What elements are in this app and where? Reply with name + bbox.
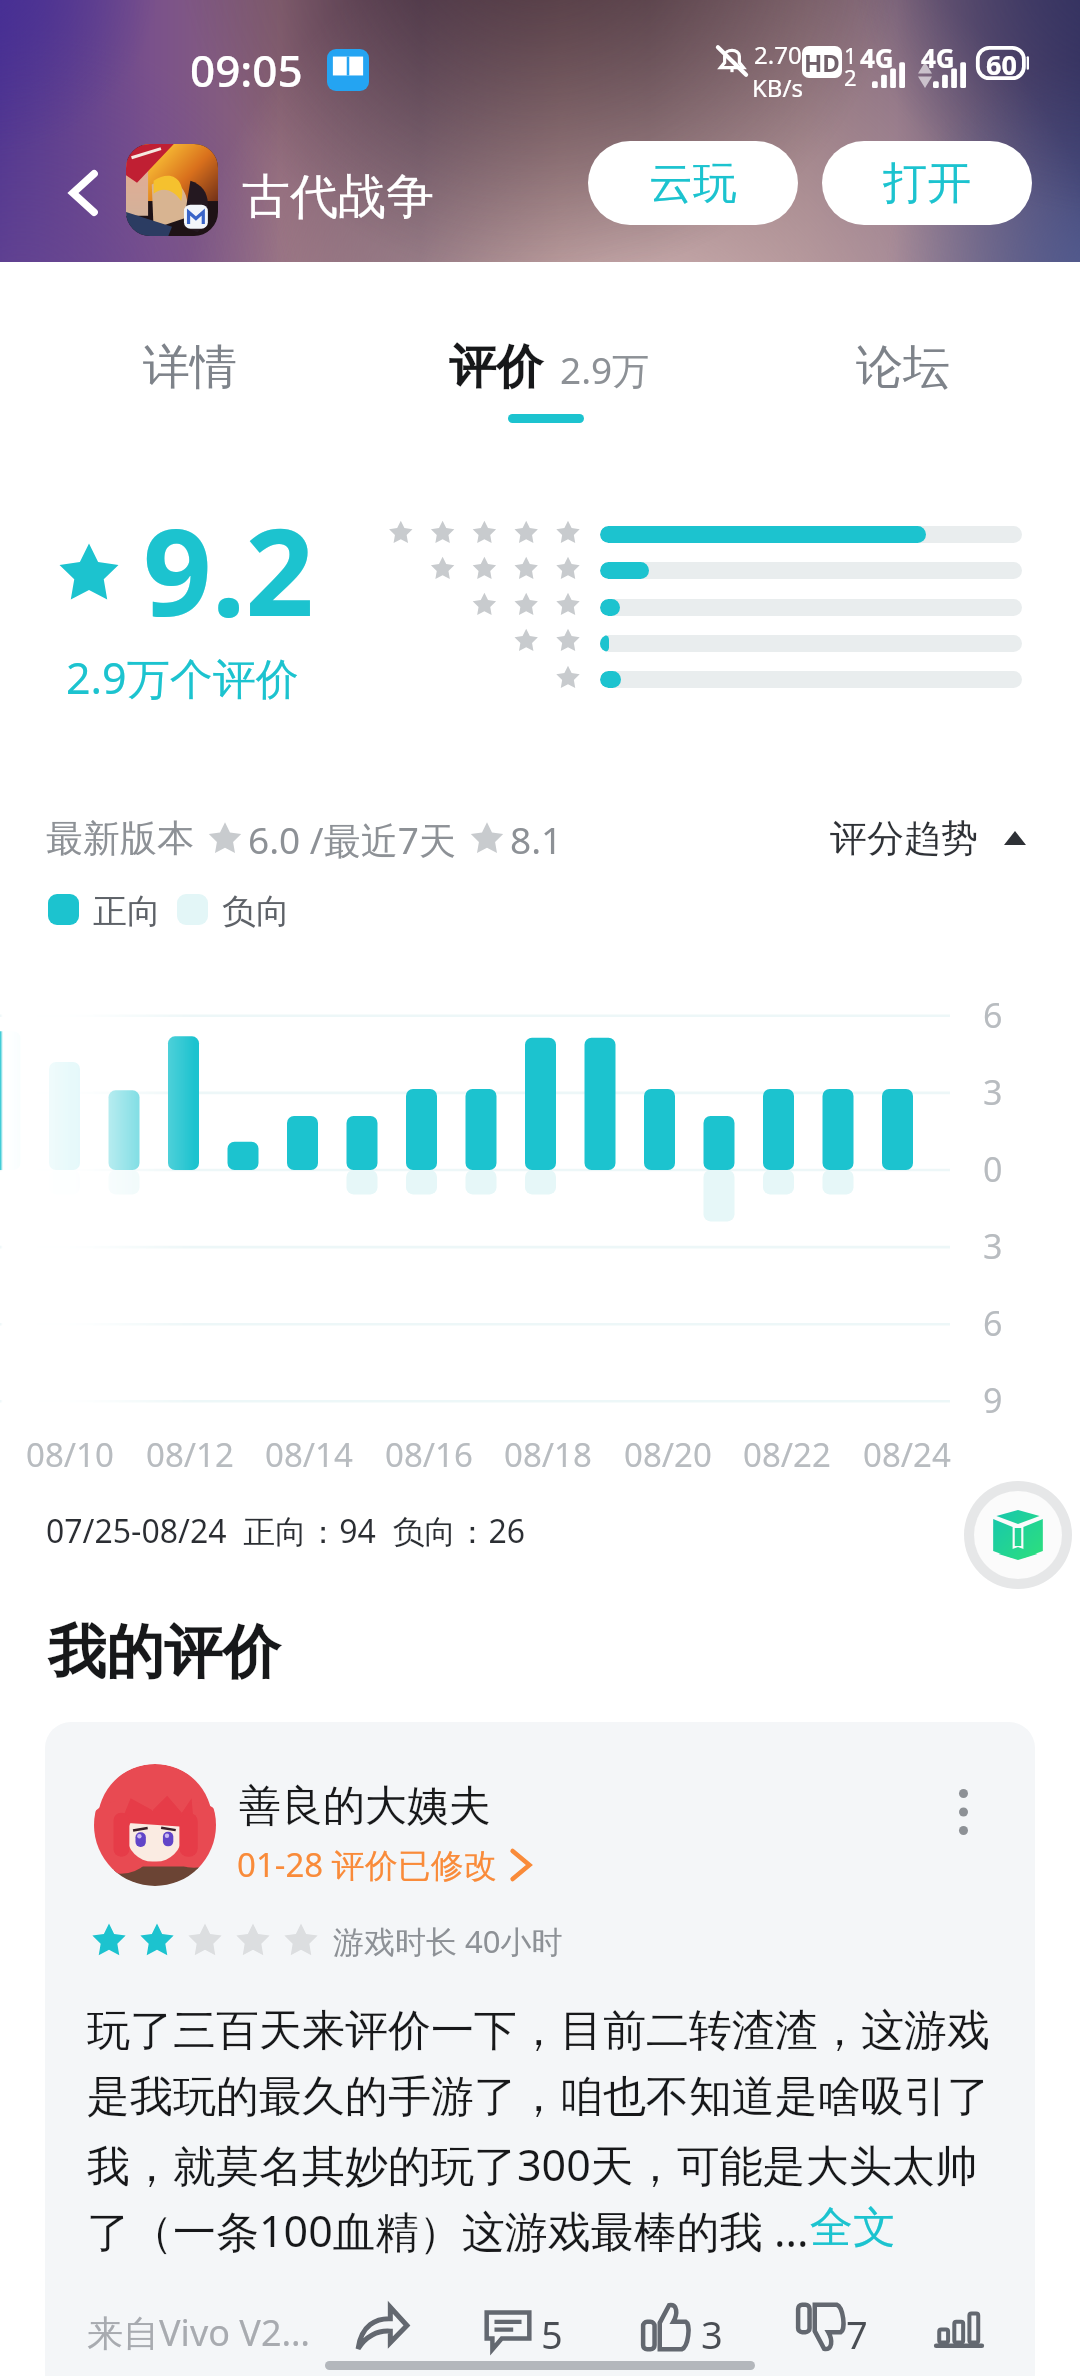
- staticText: 3: [983, 1223, 1003, 1269]
- staticText: 2.70: [754, 38, 802, 71]
- button[interactable]: 01-28 评价已修改: [237, 1842, 533, 1887]
- staticText: 0: [983, 1146, 1003, 1192]
- staticText: 游戏时长 40小时: [333, 1920, 563, 1962]
- staticText: 9: [983, 1377, 1003, 1423]
- staticText: HD: [804, 46, 840, 78]
- button[interactable]: 善良的大姨夫: [45, 1722, 1035, 2376]
- staticText: 08/14: [265, 1432, 353, 1477]
- staticText: KB/s: [752, 71, 803, 104]
- staticText: 7: [846, 2308, 868, 2360]
- button[interactable]: Comments: [477, 2296, 539, 2358]
- staticText: 08/24: [863, 1432, 951, 1477]
- staticText: 01-28 评价已修改: [237, 1842, 497, 1887]
- staticText: 08/20: [624, 1432, 712, 1477]
- button[interactable]: 论坛: [743, 262, 1063, 442]
- staticText: 6.0 /最近7天: [248, 814, 456, 862]
- staticText: 2.9万个评价: [66, 648, 299, 707]
- staticText: 评价: [449, 338, 543, 397]
- staticText: 4G: [860, 40, 894, 75]
- staticText: 了（一条100血精）这游戏最棒的我 ...: [87, 2201, 809, 2260]
- staticText: 2: [844, 62, 857, 92]
- button[interactable]: Like: [635, 2296, 697, 2358]
- button[interactable]: Back: [42, 151, 126, 235]
- staticText: 评分趋势: [830, 815, 978, 862]
- button[interactable]: Share: [351, 2296, 413, 2358]
- button[interactable]: Statistics: [928, 2296, 990, 2358]
- button[interactable]: 云玩: [588, 141, 798, 225]
- staticText: 4G: [921, 40, 955, 75]
- staticText: 打开: [883, 156, 971, 211]
- staticText: 详情: [143, 338, 237, 397]
- staticText: 我，就莫名其妙的玩了300天，可能是大头太帅: [87, 2135, 978, 2194]
- staticText: 09:05: [190, 40, 303, 100]
- staticText: 负向: [222, 890, 290, 928]
- staticText: 3: [701, 2308, 723, 2360]
- staticText: 论坛: [856, 338, 950, 397]
- staticText: 08/18: [504, 1432, 592, 1477]
- staticText: 08/12: [146, 1432, 234, 1477]
- button[interactable]: 3D view: [964, 1481, 1072, 1589]
- staticText: 我的评价: [48, 1616, 280, 1689]
- button[interactable]: Dislike: [790, 2296, 852, 2358]
- staticText: 最新版本: [46, 815, 194, 862]
- staticText: 是我玩的最久的手游了，咱也不知道是啥吸引了: [87, 2070, 990, 2124]
- button[interactable]: 详情: [30, 262, 350, 442]
- button[interactable]: 评价: [380, 262, 700, 442]
- staticText: 正向: [93, 890, 161, 928]
- staticText: 玩了三百天来评价一下，目前二转渣渣，这游戏: [87, 2004, 990, 2058]
- staticText: 来自Vivo V2…: [87, 2308, 310, 2357]
- staticText: 07/25-08/24 正向：94 负向：26: [46, 1509, 526, 1553]
- staticText: 60: [986, 46, 1017, 80]
- staticText: 8.1: [510, 814, 563, 862]
- button[interactable]: 评分趋势: [830, 814, 1026, 862]
- staticText: 08/22: [743, 1432, 831, 1477]
- staticText: 全文: [810, 2201, 896, 2255]
- staticText: 2.9万: [560, 344, 650, 395]
- staticText: 善良的大姨夫: [239, 1780, 491, 1833]
- staticText: 云玩: [649, 156, 737, 211]
- staticText: 古代战争: [242, 167, 434, 227]
- button[interactable]: More options: [931, 1780, 995, 1844]
- staticText: 3: [983, 1069, 1003, 1115]
- staticText: 1: [844, 40, 857, 70]
- staticText: 08/16: [385, 1432, 473, 1477]
- staticText: 6: [983, 992, 1003, 1038]
- button[interactable]: 打开: [822, 141, 1032, 225]
- staticText: 5: [541, 2308, 563, 2360]
- staticText: 6: [983, 1300, 1003, 1346]
- staticText: 08/10: [26, 1432, 114, 1477]
- staticText: 9.2: [143, 488, 314, 651]
